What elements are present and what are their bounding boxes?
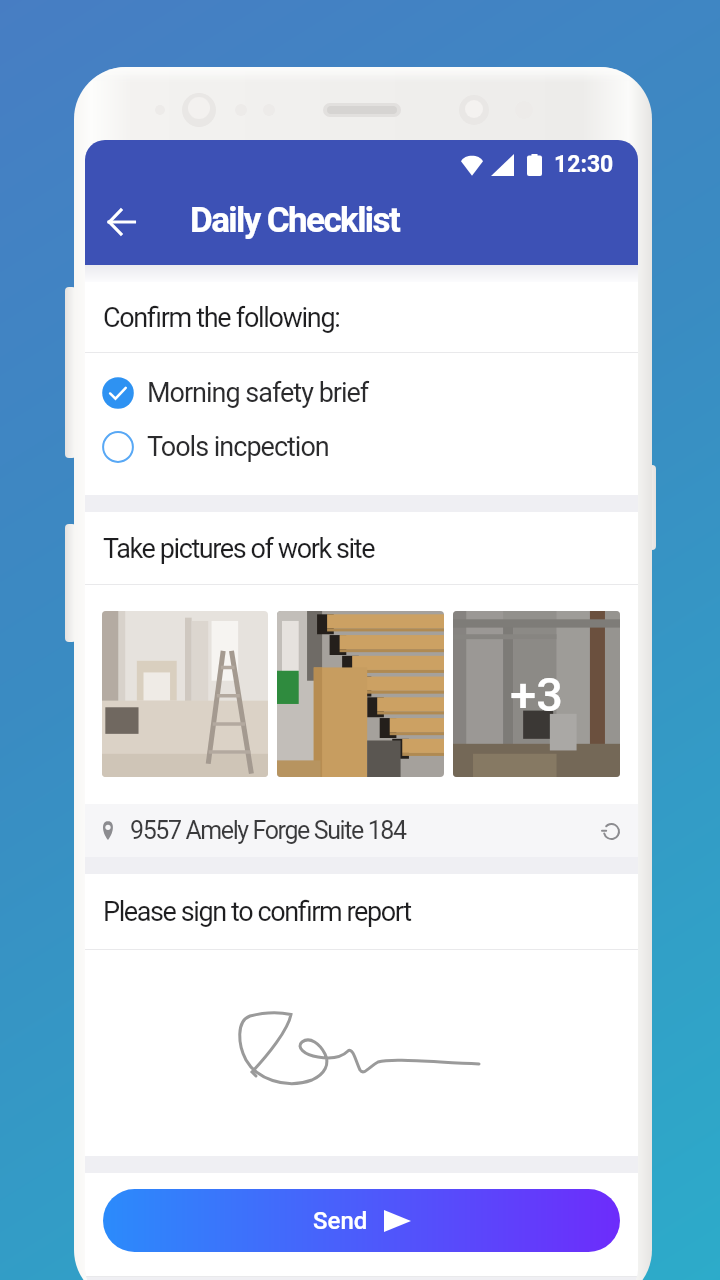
button[interactable]	[102, 611, 268, 777]
staticText: Confirm the following:	[103, 302, 340, 334]
button[interactable]: +3	[453, 611, 620, 777]
staticText: +3	[510, 667, 563, 722]
button[interactable]: Refresh	[592, 812, 630, 850]
staticText: Morning safety brief	[147, 377, 369, 409]
staticText: Daily Checklist	[190, 200, 400, 241]
staticText: Tools incpection	[147, 431, 329, 463]
staticText: 12:30	[554, 151, 614, 178]
staticText: Take pictures of work site	[103, 533, 375, 565]
button[interactable]: Send	[103, 1189, 620, 1252]
button[interactable]: Morning safety brief	[85, 366, 638, 420]
button[interactable]	[277, 611, 444, 777]
staticText: 9557 Amely Forge Suite 184	[130, 816, 406, 845]
button[interactable]: Tools incpection	[85, 420, 638, 474]
staticText: Please sign to confirm report	[103, 896, 411, 928]
staticText: Send	[313, 1207, 368, 1235]
button[interactable]: Back	[93, 194, 149, 250]
